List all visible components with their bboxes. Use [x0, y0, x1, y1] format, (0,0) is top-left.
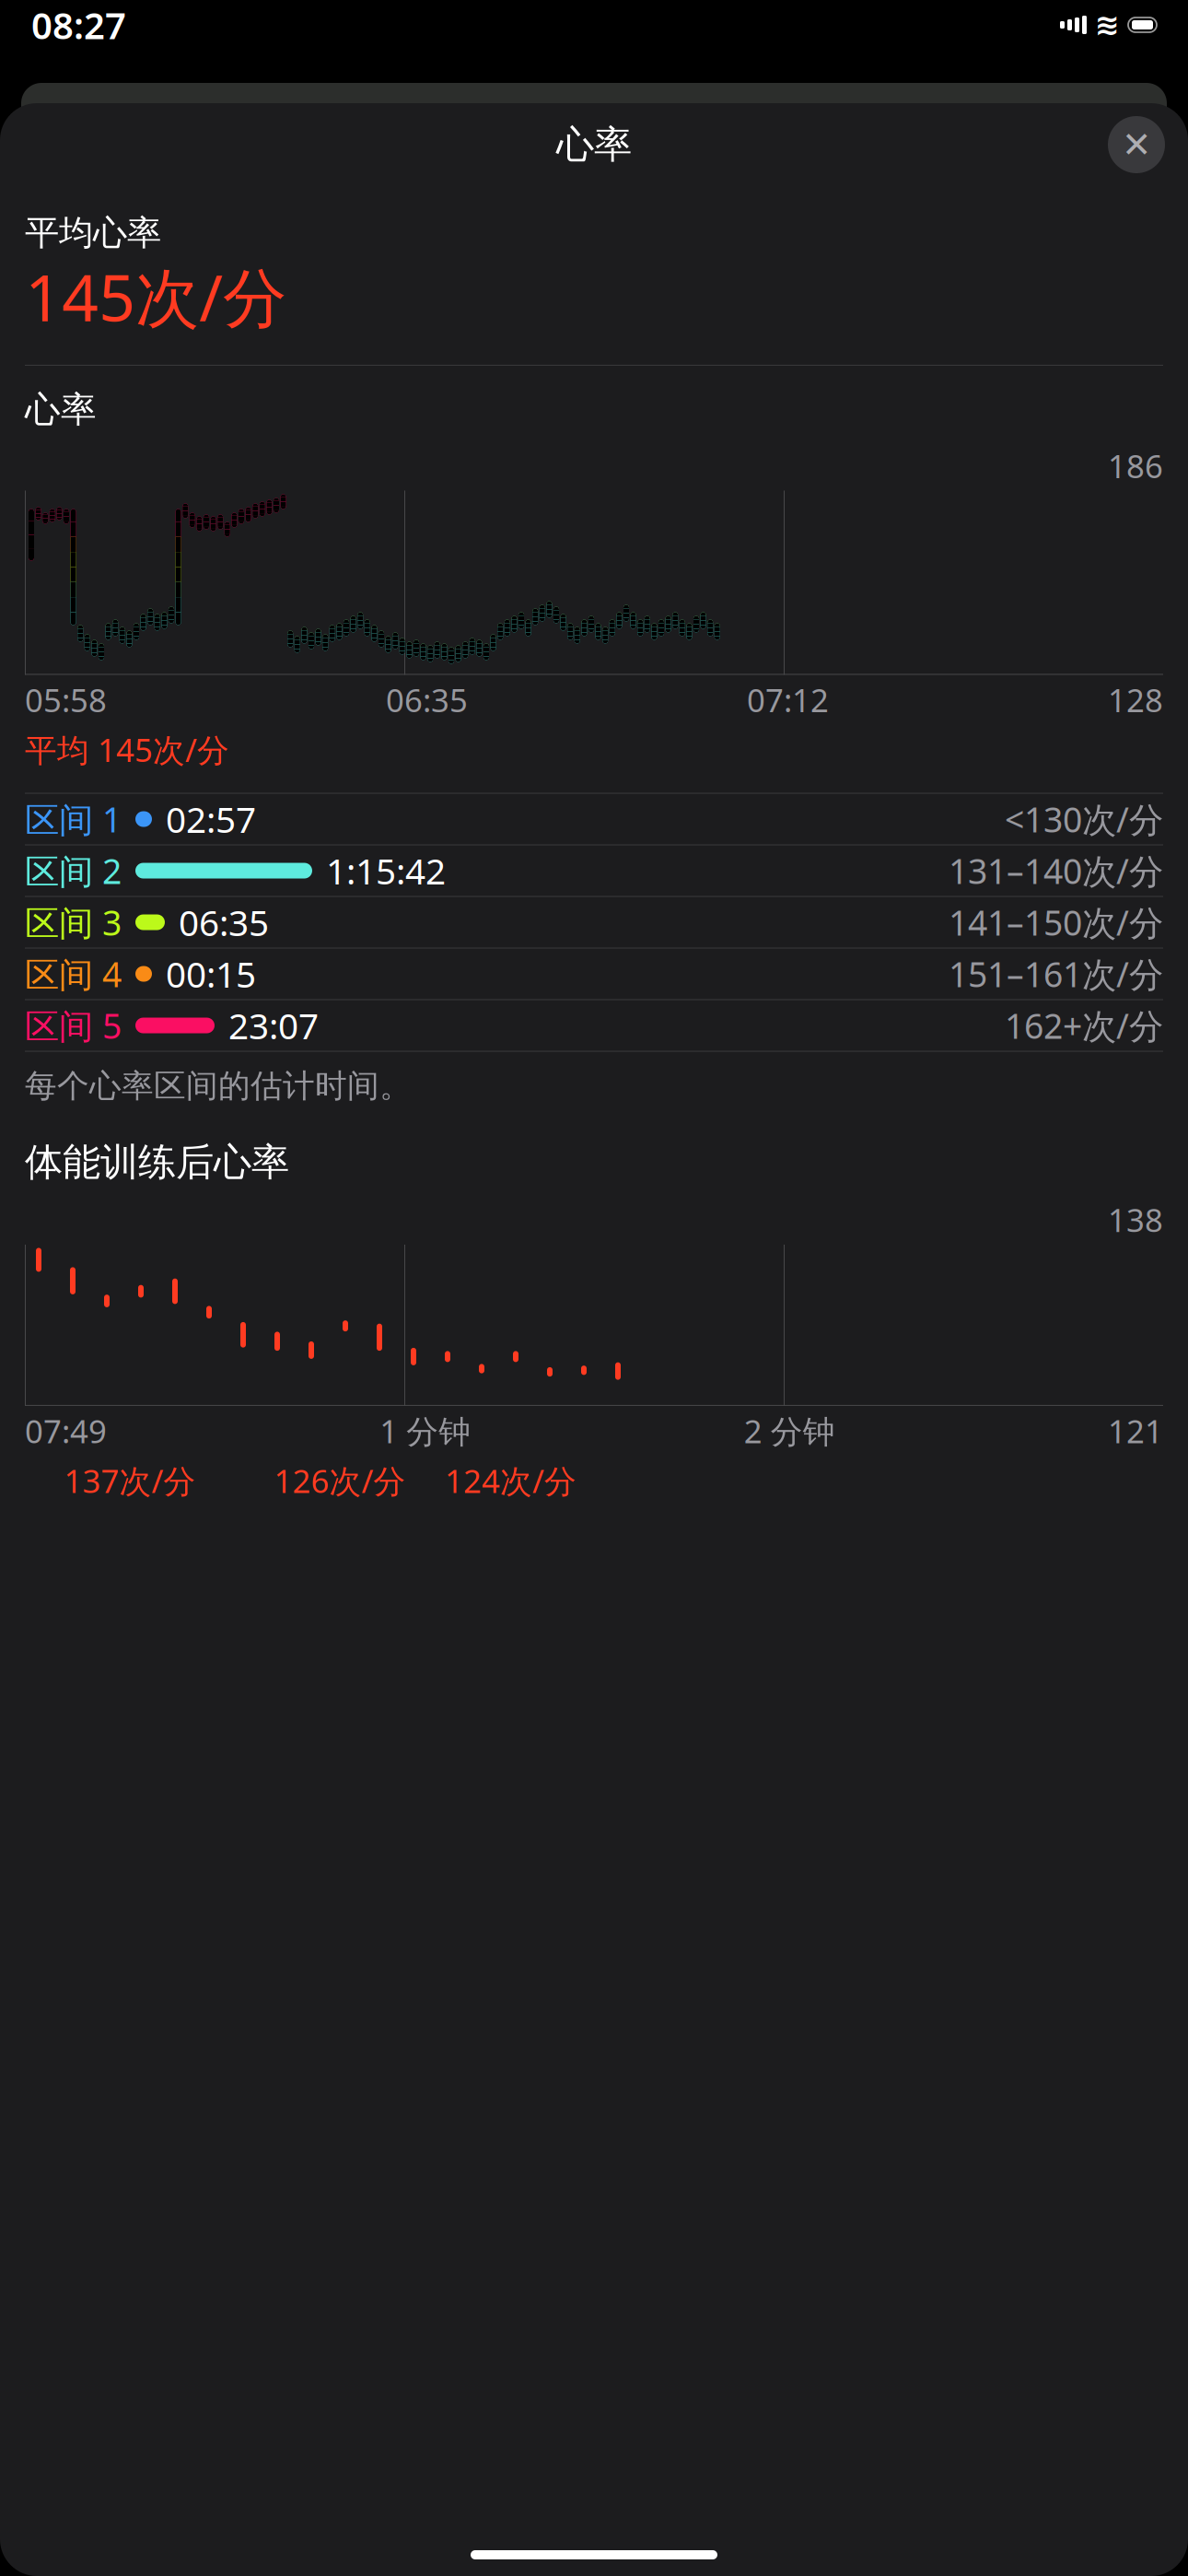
staticText: 131–140次/分 — [949, 848, 1163, 893]
staticText: 1:15:42 — [326, 847, 446, 894]
staticText: 体能训练后心率 — [25, 1139, 289, 1186]
staticText: 23:07 — [228, 1002, 319, 1049]
staticText: 区间 3 — [25, 899, 122, 945]
staticText: 07:49 — [25, 1410, 107, 1452]
staticText: 2 分钟 — [744, 1410, 835, 1452]
staticText: 平均 145次/分 — [25, 728, 229, 771]
staticText: 区间 2 — [25, 848, 122, 893]
staticText: ≋ — [1095, 8, 1120, 42]
staticText: 02:57 — [166, 795, 256, 843]
staticText: 1 分钟 — [380, 1410, 471, 1452]
staticText: 07:12 — [747, 679, 829, 721]
button[interactable]: 区间 4 — [25, 948, 1163, 1000]
button[interactable]: 关闭 — [1108, 116, 1165, 173]
staticText: 128 — [1108, 679, 1163, 721]
staticText: 平均心率 — [25, 212, 161, 254]
staticText: ✕ — [1122, 124, 1151, 165]
staticText: 心率 — [556, 121, 632, 168]
staticText: 124次/分 — [445, 1459, 577, 1502]
staticText: 06:35 — [179, 899, 269, 946]
button[interactable]: 区间 1 — [25, 794, 1163, 845]
staticText: 151–161次/分 — [949, 951, 1163, 997]
staticText: 区间 5 — [25, 1003, 122, 1048]
staticText: 08:27 — [31, 0, 126, 49]
staticText: 121 — [1108, 1410, 1163, 1452]
button[interactable]: 区间 3 — [25, 897, 1163, 948]
staticText: 00:15 — [166, 950, 256, 998]
staticText: 区间 1 — [25, 796, 122, 842]
button[interactable]: 区间 2 — [25, 845, 1163, 897]
staticText: 186 — [1108, 444, 1163, 487]
staticText: <130次/分 — [1005, 796, 1163, 842]
staticText: 区间 4 — [25, 951, 122, 997]
staticText: 心率 — [25, 388, 97, 432]
staticText: 06:35 — [386, 679, 468, 721]
staticText: 145次/分 — [25, 254, 286, 339]
staticText: 137次/分 — [64, 1459, 196, 1502]
button[interactable]: 区间 5 — [25, 1000, 1163, 1052]
staticText: 05:58 — [25, 679, 107, 721]
staticText: 162+次/分 — [1005, 1003, 1163, 1048]
staticText: 138 — [1108, 1199, 1163, 1241]
staticText: 126次/分 — [274, 1459, 406, 1502]
staticText: 每个心率区间的估计时间。 — [25, 1066, 412, 1106]
staticText: 141–150次/分 — [949, 899, 1163, 945]
